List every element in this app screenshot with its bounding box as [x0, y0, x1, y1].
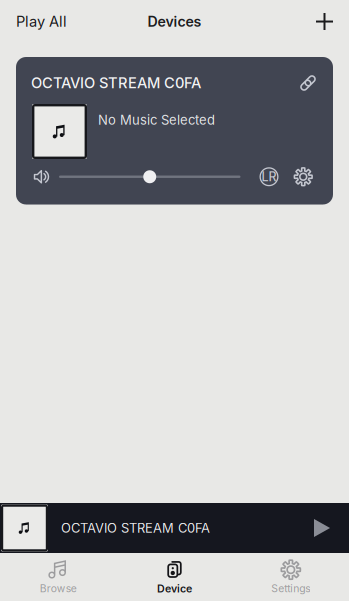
button[interactable]: Device: [116, 553, 233, 601]
button[interactable]: Add device: [300, 4, 349, 39]
button[interactable]: Settings: [233, 553, 349, 601]
staticText: Settings: [271, 582, 310, 595]
staticText: OCTAVIO STREAM C0FA: [31, 74, 201, 92]
button[interactable]: Play All: [0, 4, 83, 39]
staticText: Play All: [16, 13, 67, 30]
button[interactable]: OCTAVIO STREAM C0FA: [0, 503, 349, 553]
staticText: No Music Selected: [98, 112, 215, 128]
button[interactable]: Group speakers: [298, 73, 318, 93]
staticText: LR: [261, 169, 276, 184]
button[interactable]: Browse: [0, 553, 116, 601]
staticText: Device: [157, 582, 192, 595]
staticText: Browse: [40, 582, 77, 595]
button[interactable]: Stereo pair: [259, 167, 278, 186]
staticText: OCTAVIO STREAM C0FA: [61, 520, 210, 536]
button[interactable]: Device settings: [278, 167, 317, 186]
staticText: Devices: [147, 13, 201, 30]
